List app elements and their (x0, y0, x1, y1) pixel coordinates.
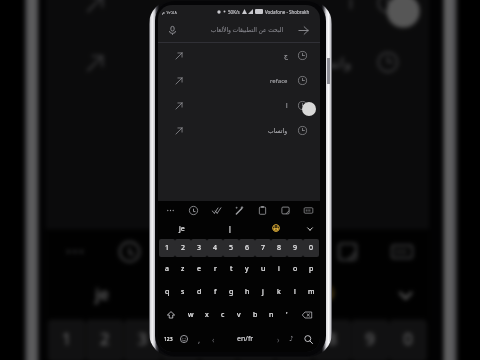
button[interactable]: je (45, 269, 159, 319)
button[interactable]: 0 (303, 239, 319, 257)
button[interactable]: Previous language (207, 326, 219, 352)
button[interactable]: 8 (313, 319, 351, 360)
button[interactable]: je (158, 218, 206, 239)
button[interactable]: Search (299, 326, 318, 352)
button[interactable]: 5 (199, 319, 237, 360)
button[interactable]: 😀 (270, 269, 382, 319)
button[interactable]: i (271, 257, 287, 281)
staticText: واتساب (306, 54, 353, 70)
button[interactable]: t (223, 257, 239, 281)
button[interactable]: Grammar check (164, 232, 202, 269)
button[interactable]: 7 (255, 239, 271, 257)
button[interactable]: w (183, 303, 199, 326)
staticText: | (211, 284, 221, 307)
button[interactable]: Expand suggestions (300, 218, 320, 239)
button[interactable]: n (263, 303, 279, 326)
button[interactable]: Voice search (163, 21, 182, 40)
button[interactable]: 4 (207, 239, 223, 257)
staticText: 3 (197, 243, 202, 253)
staticText: o (293, 264, 298, 274)
button[interactable]: e (191, 257, 207, 281)
button[interactable]: Shift (159, 303, 183, 326)
button[interactable]: 2 (86, 319, 124, 360)
button[interactable]: ا (45, 0, 429, 32)
button[interactable]: More options (162, 202, 178, 218)
button[interactable]: واتساب (158, 118, 320, 143)
button[interactable]: 3 (191, 239, 207, 257)
staticText: b (253, 310, 258, 320)
button[interactable]: Submit search (294, 21, 313, 40)
button[interactable]: Next language (272, 326, 284, 352)
button[interactable]: o (287, 257, 303, 281)
button[interactable]: Expand suggestions (382, 269, 429, 319)
button[interactable]: Assistant (185, 202, 201, 218)
button[interactable]: واتساب (45, 32, 429, 92)
button[interactable]: Clipboard (254, 202, 270, 218)
staticText: ا (349, 0, 353, 11)
button[interactable]: 6 (239, 239, 255, 257)
button[interactable]: | (159, 269, 271, 319)
staticText: a (165, 264, 169, 274)
button[interactable]: q (159, 281, 175, 303)
button[interactable]: Translate (231, 202, 247, 218)
staticText: f (214, 287, 217, 297)
staticText: 1 (165, 243, 170, 253)
button[interactable]: Grammar check (208, 202, 224, 218)
button[interactable]: 1 (48, 319, 86, 360)
button[interactable]: en/fr (219, 326, 272, 352)
button[interactable]: c (215, 303, 231, 326)
button[interactable]: | (206, 218, 253, 239)
button[interactable]: 3 (124, 319, 161, 360)
button[interactable]: Clipboard (273, 232, 311, 269)
button[interactable]: 7 (275, 319, 313, 360)
button[interactable]: p (303, 257, 319, 281)
button[interactable]: 8 (271, 239, 287, 257)
button[interactable]: 9 (351, 319, 389, 360)
button[interactable]: 0 (389, 319, 427, 360)
button[interactable]: GIF (300, 202, 316, 218)
button[interactable]: , (192, 326, 207, 352)
button[interactable]: ا (158, 93, 320, 118)
staticText: 4 (176, 329, 188, 352)
button[interactable]: v (231, 303, 247, 326)
button[interactable]: s (175, 281, 191, 303)
button[interactable]: b (247, 303, 263, 326)
button[interactable]: 4 (161, 319, 199, 360)
staticText: 8 (277, 243, 282, 253)
button[interactable]: Assistant (109, 232, 147, 269)
staticText: ♪ (289, 335, 294, 343)
button[interactable]: ♪ (284, 326, 299, 352)
button[interactable]: 9 (287, 239, 303, 257)
button[interactable]: a (159, 257, 175, 281)
button[interactable]: Backspace (295, 303, 319, 326)
button[interactable]: k (271, 281, 287, 303)
button[interactable]: d (191, 281, 207, 303)
button[interactable]: GIF (382, 232, 420, 269)
button[interactable]: x (199, 303, 215, 326)
button[interactable]: l (287, 281, 303, 303)
button[interactable]: m (303, 281, 319, 303)
button[interactable]: 2 (175, 239, 191, 257)
button[interactable]: 6 (237, 319, 275, 360)
button[interactable]: Emoji (176, 326, 192, 352)
button[interactable]: y (239, 257, 255, 281)
button[interactable]: Stickers (327, 232, 365, 269)
button[interactable]: 5 (223, 239, 239, 257)
button[interactable]: h (239, 281, 255, 303)
staticText: d (197, 287, 202, 297)
button[interactable]: j (255, 281, 271, 303)
button[interactable]: reface (158, 68, 320, 93)
button[interactable]: Stickers (277, 202, 293, 218)
button[interactable]: g (223, 281, 239, 303)
button[interactable]: u (255, 257, 271, 281)
button[interactable]: 1 (159, 239, 175, 257)
button[interactable]: r (207, 257, 223, 281)
button[interactable]: 😀 (253, 218, 300, 239)
button[interactable]: 123 (160, 326, 176, 352)
button[interactable]: z (175, 257, 191, 281)
button[interactable]: ج (158, 43, 320, 68)
button[interactable]: Translate (218, 232, 256, 269)
button[interactable]: ' (279, 303, 295, 326)
button[interactable]: f (207, 281, 223, 303)
